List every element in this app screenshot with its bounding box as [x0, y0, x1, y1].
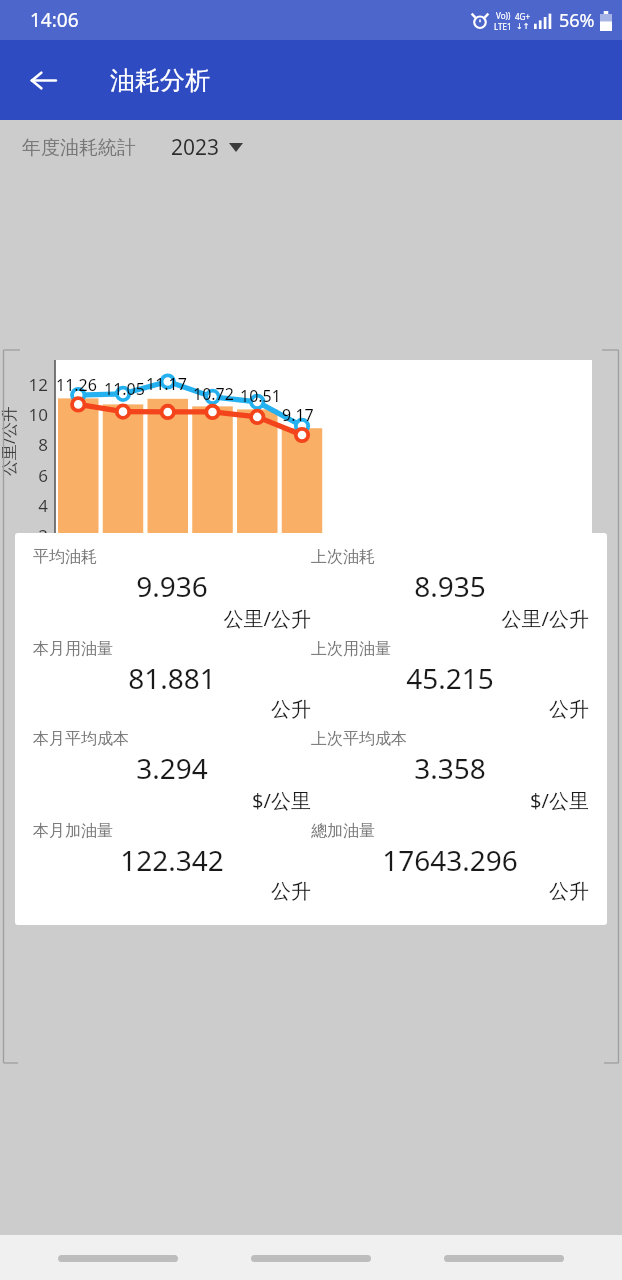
staticText: 本月平均成本 [33, 729, 129, 749]
button[interactable]: Recents [43, 1241, 193, 1275]
staticText: 2 [20, 524, 48, 547]
staticText: 4 [20, 494, 48, 517]
staticText: 公升 [33, 697, 311, 722]
staticText: 最低油耗 [257, 618, 317, 637]
staticText: 81.881 [33, 659, 311, 697]
staticText: 公里/公升 [0, 406, 20, 476]
staticText: 11.26 [56, 374, 97, 396]
staticText: 九月 [414, 573, 464, 593]
staticText: 公里/公升 [311, 605, 589, 632]
staticText: $/公里 [311, 787, 589, 814]
staticText: 11.17 [146, 373, 187, 395]
staticText: 10 [20, 403, 48, 426]
staticText: LTE1 [494, 21, 512, 32]
staticText: 本月用油量 [33, 639, 113, 659]
staticText: 公升 [33, 879, 311, 904]
staticText: 年度油耗統計 [22, 136, 136, 160]
staticText: 11.05 [104, 378, 145, 400]
staticText: 6 [20, 464, 48, 487]
button[interactable]: 2023 [169, 127, 245, 168]
button[interactable]: 總加油量 [311, 821, 589, 911]
staticText: 9.936 [33, 567, 311, 605]
staticText: 3.358 [311, 749, 589, 787]
staticText: 公升 [311, 697, 589, 722]
button[interactable]: 最低油耗 [238, 618, 317, 637]
staticText: 0 [20, 554, 48, 577]
staticText: $/公里 [33, 787, 311, 814]
staticText: 平均油耗 [33, 547, 97, 567]
staticText: 10.72 [193, 383, 234, 405]
staticText: 4G+ [515, 11, 530, 22]
button[interactable]: 平均油耗 [33, 547, 311, 639]
staticText: 公升 [311, 879, 589, 904]
staticText: 9.17 [282, 404, 314, 426]
button[interactable]: Home [236, 1241, 386, 1275]
staticText: 上次油耗 [311, 547, 375, 567]
button[interactable]: 最高油耗 [150, 618, 229, 637]
staticText: 122.342 [33, 841, 311, 879]
button[interactable]: 本月加油量 [33, 821, 311, 911]
staticText: 2023 [171, 133, 220, 162]
staticText: 總加油量 [311, 821, 375, 841]
button[interactable]: 本月平均成本 [33, 729, 311, 821]
button[interactable]: 上次平均成本 [311, 729, 589, 821]
staticText: Vo)) [496, 10, 511, 21]
button[interactable]: Back [14, 51, 72, 109]
button[interactable]: 上次用油量 [311, 639, 589, 729]
staticText: 3.294 [33, 749, 311, 787]
staticText: 油耗分析 [110, 65, 210, 96]
button[interactable]: 上次油耗 [311, 547, 589, 639]
staticText: 本月加油量 [33, 821, 113, 841]
button[interactable]: Back [429, 1241, 579, 1275]
staticText: 8 [20, 433, 48, 456]
staticText: 56% [559, 8, 595, 33]
staticText: 17643.296 [311, 841, 589, 879]
staticText: 最高油耗 [169, 618, 229, 637]
staticText: 上次用油量 [311, 639, 391, 659]
staticText: 月份 [0, 595, 622, 616]
staticText: 上次平均成本 [311, 729, 407, 749]
staticText: 8.935 [311, 567, 589, 605]
staticText: 三月 [146, 573, 196, 593]
staticText: ↓↑ [516, 22, 530, 31]
staticText: 45.215 [311, 659, 589, 697]
staticText: 10.51 [240, 385, 281, 407]
staticText: 12 [20, 373, 48, 396]
staticText: 公里/公升 [33, 605, 311, 632]
staticText: 14:06 [30, 7, 79, 33]
button[interactable]: 本月用油量 [33, 639, 311, 729]
